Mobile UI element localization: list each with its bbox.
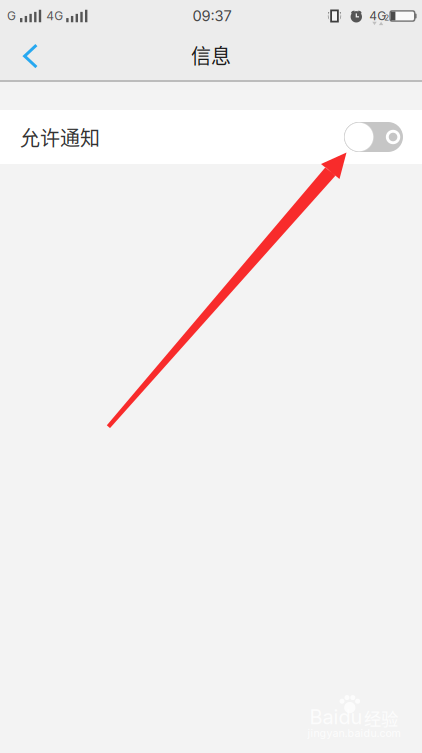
button[interactable]: 允许通知 (344, 122, 403, 152)
staticText: 09:37 (192, 7, 231, 25)
staticText: 信息 (191, 40, 231, 69)
staticText: 2 (384, 13, 389, 22)
staticText: 允许通知 (20, 122, 100, 151)
staticText: 4G (46, 9, 63, 23)
staticText: G (7, 9, 16, 23)
button[interactable]: 允许通知 (0, 110, 422, 164)
staticText: Baidu (309, 705, 362, 729)
staticText: 4G (369, 9, 386, 23)
button[interactable]: Back (0, 31, 55, 78)
